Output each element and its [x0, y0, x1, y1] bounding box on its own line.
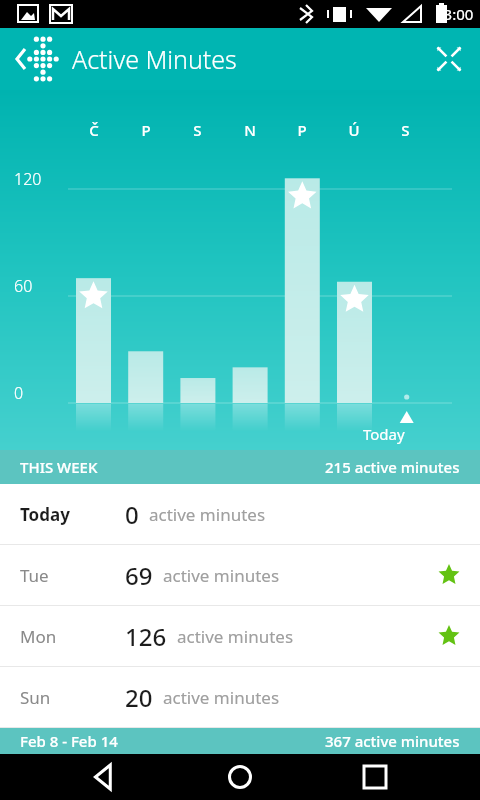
staticText: Today [363, 424, 405, 444]
staticText: Feb 8 - Feb 14 [20, 731, 118, 751]
button[interactable]: Recent apps [345, 754, 405, 800]
staticText: 60 [14, 275, 33, 297]
staticText: 367 active minutes [325, 731, 460, 751]
staticText: Sun [20, 686, 125, 709]
staticText: 215 active minutes [325, 457, 460, 477]
staticText: active minutes [163, 686, 280, 709]
button[interactable]: Home [210, 754, 270, 800]
staticText: 126 [125, 620, 167, 653]
staticText: active minutes [149, 503, 266, 526]
staticText: 13:00 [435, 4, 474, 24]
button[interactable]: Expand [418, 28, 480, 90]
button[interactable]: Mon [0, 606, 480, 666]
button[interactable]: Back [75, 754, 135, 800]
staticText: P [141, 120, 151, 140]
staticText: N [244, 120, 256, 140]
button[interactable]: Today [0, 484, 480, 544]
staticText: Č [89, 120, 99, 140]
staticText: Mon [20, 625, 125, 648]
staticText: active minutes [163, 564, 280, 587]
staticText: THIS WEEK [20, 457, 98, 477]
staticText: Today [20, 503, 125, 526]
staticText: Active Minutes [72, 42, 237, 76]
staticText: active minutes [177, 625, 294, 648]
staticText: P [297, 120, 307, 140]
staticText: 120 [14, 168, 42, 190]
staticText: 69 [125, 559, 153, 592]
staticText: Ú [348, 120, 360, 140]
button[interactable]: Back [6, 28, 68, 90]
staticText: 20 [125, 681, 153, 714]
button[interactable]: Tue [0, 545, 480, 605]
button[interactable]: Feb 8 - Feb 14 [0, 728, 480, 754]
staticText: S [193, 120, 202, 140]
staticText: 0 [125, 498, 139, 531]
staticText: S [401, 120, 410, 140]
staticText: Tue [20, 564, 125, 587]
button[interactable]: THIS WEEK [0, 450, 480, 484]
button[interactable]: Sun [0, 667, 480, 727]
staticText: 0 [14, 382, 24, 404]
